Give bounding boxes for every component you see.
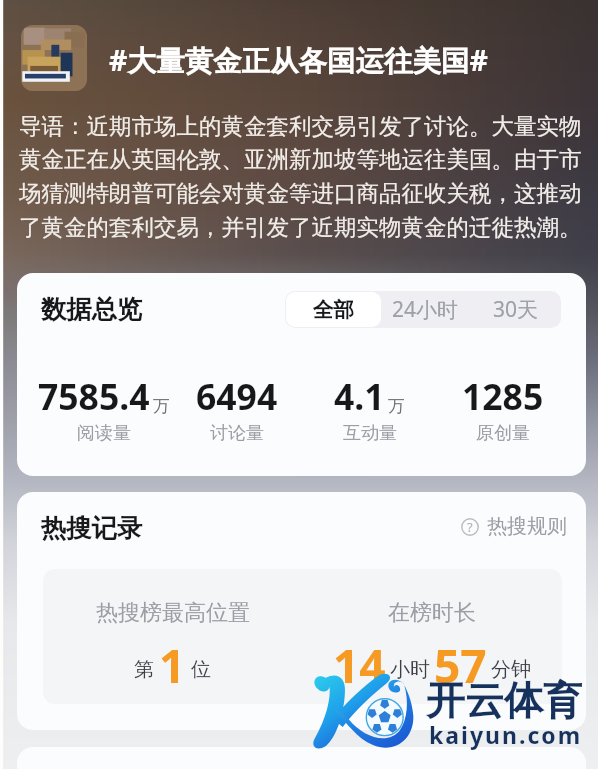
staticText: 57 bbox=[434, 634, 487, 697]
staticText: 万 bbox=[153, 396, 170, 417]
button[interactable]: 30天 bbox=[471, 292, 561, 327]
staticText: 小时 bbox=[390, 657, 430, 682]
staticText: 万 bbox=[388, 396, 405, 417]
staticText: kaiyun.com bbox=[429, 719, 583, 750]
staticText: 30天 bbox=[493, 295, 539, 324]
staticText: 第 bbox=[134, 657, 154, 682]
staticText: 6494 bbox=[196, 372, 278, 420]
staticText: 开云体育 bbox=[426, 676, 582, 725]
staticText: 全部 bbox=[313, 297, 355, 323]
staticText: 讨论量 bbox=[210, 422, 264, 445]
button[interactable]: 全部 bbox=[286, 292, 381, 327]
staticText: #大量黄金正从各国运往美国# bbox=[109, 41, 488, 80]
staticText: 7585.4 bbox=[38, 372, 150, 420]
staticText: ? bbox=[467, 518, 473, 536]
staticText: 在榜时长 bbox=[388, 599, 476, 627]
button[interactable]: 话题配图 bbox=[21, 25, 87, 91]
staticText: 热搜记录 bbox=[41, 513, 143, 545]
staticText: 4.1 bbox=[334, 372, 385, 420]
staticText: 热搜规则 bbox=[487, 514, 567, 539]
staticText: 阅读量 bbox=[77, 422, 131, 445]
staticText: 原创量 bbox=[476, 422, 530, 445]
staticText: 互动量 bbox=[343, 422, 397, 445]
staticText: 数据总览 bbox=[41, 294, 143, 326]
button[interactable]: 24小时 bbox=[380, 292, 471, 327]
staticText: 24小时 bbox=[392, 295, 459, 324]
button[interactable]: 热搜规则 bbox=[461, 514, 567, 539]
staticText: 导语：近期市场上的黄金套利交易引发了讨论。大量实物黄金正在从英国伦敦、亚洲新加坡… bbox=[19, 112, 585, 242]
staticText: 1285 bbox=[462, 372, 544, 420]
staticText: 位 bbox=[191, 657, 211, 682]
staticText: 分钟 bbox=[491, 657, 531, 682]
staticText: 热搜榜最高位置 bbox=[96, 599, 250, 627]
staticText: 1 bbox=[159, 634, 186, 697]
staticText: 14 bbox=[333, 634, 386, 697]
